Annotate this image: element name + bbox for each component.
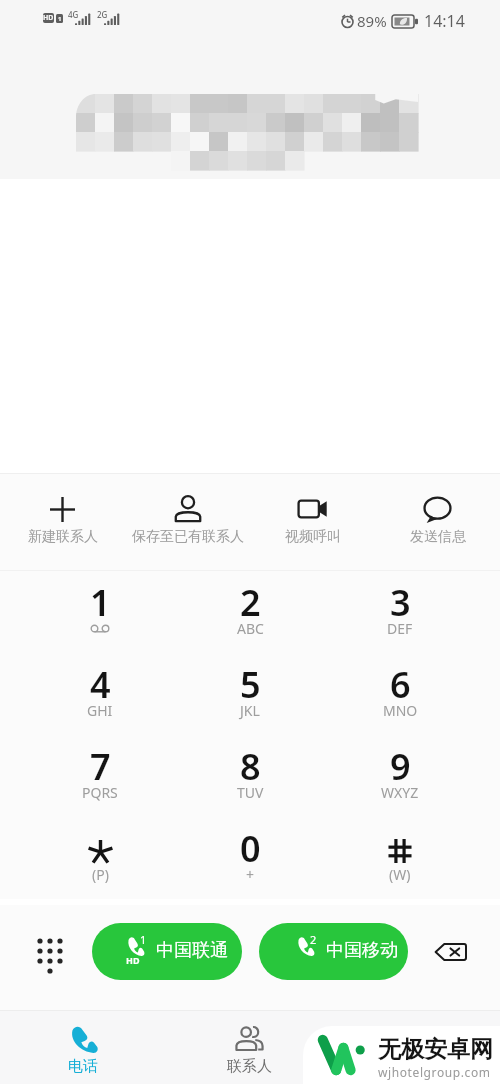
button[interactable]: 6: [325, 653, 475, 735]
staticText: 2G: [97, 9, 108, 20]
staticText: 2: [240, 578, 261, 627]
staticText: PQRS: [82, 783, 118, 802]
staticText: 4G: [68, 9, 79, 20]
staticText: 5: [240, 660, 261, 709]
staticText: JKL: [240, 701, 260, 720]
button[interactable]: 0: [175, 817, 325, 899]
staticText: 89%: [357, 11, 387, 31]
button[interactable]: 保存至已有联系人: [125, 474, 250, 570]
button[interactable]: Hide keypad: [26, 930, 74, 978]
button[interactable]: 7: [25, 735, 175, 817]
staticText: 1: [58, 15, 62, 23]
button[interactable]: 8: [175, 735, 325, 817]
staticText: 7: [90, 742, 111, 791]
button[interactable]: (W): [325, 817, 475, 899]
staticText: (W): [389, 865, 411, 884]
button[interactable]: Delete: [426, 928, 474, 976]
staticText: 视频呼叫: [285, 528, 341, 546]
staticText: 中国移动: [326, 939, 398, 962]
button[interactable]: 3: [325, 571, 475, 653]
staticText: 无极安卓网: [378, 1035, 493, 1064]
button[interactable]: 1: [25, 571, 175, 653]
staticText: 14:14: [424, 10, 465, 32]
button[interactable]: 5: [175, 653, 325, 735]
staticText: WXYZ: [381, 783, 419, 802]
staticText: wjhotelgroup.com: [378, 1064, 491, 1080]
button[interactable]: 发送信息: [375, 474, 500, 570]
staticText: MNO: [383, 701, 418, 720]
staticText: 4: [90, 660, 111, 709]
staticText: GHI: [87, 701, 113, 720]
staticText: (P): [92, 865, 109, 884]
staticText: ABC: [237, 619, 264, 638]
staticText: 中国联通: [156, 939, 228, 962]
staticText: TUV: [237, 783, 264, 802]
staticText: DEF: [387, 619, 413, 638]
staticText: 0: [240, 824, 261, 873]
staticText: HD: [126, 954, 140, 966]
staticText: 发送信息: [410, 528, 466, 546]
staticText: 3: [390, 578, 411, 627]
button[interactable]: 9: [325, 735, 475, 817]
button[interactable]: 2: [175, 571, 325, 653]
staticText: 8: [240, 742, 261, 791]
staticText: 9: [390, 742, 411, 791]
staticText: 电话: [68, 1057, 98, 1076]
staticText: +: [246, 865, 255, 884]
staticText: 联系人: [227, 1057, 272, 1076]
button[interactable]: (P): [25, 817, 175, 899]
staticText: 1: [140, 932, 147, 947]
staticText: 2: [310, 932, 317, 947]
staticText: 新建联系人: [28, 528, 98, 546]
button[interactable]: 视频呼叫: [250, 474, 375, 570]
button[interactable]: 4: [25, 653, 175, 735]
button[interactable]: 新建联系人: [0, 474, 125, 570]
button[interactable]: 联系人: [166, 1011, 333, 1084]
staticText: 保存至已有联系人: [132, 528, 244, 546]
button[interactable]: 1: [92, 923, 242, 980]
button[interactable]: 2: [259, 923, 408, 980]
button[interactable]: 电话: [0, 1011, 166, 1084]
staticText: 6: [390, 660, 411, 709]
staticText: 1: [90, 578, 111, 627]
staticText: HD: [43, 13, 54, 23]
